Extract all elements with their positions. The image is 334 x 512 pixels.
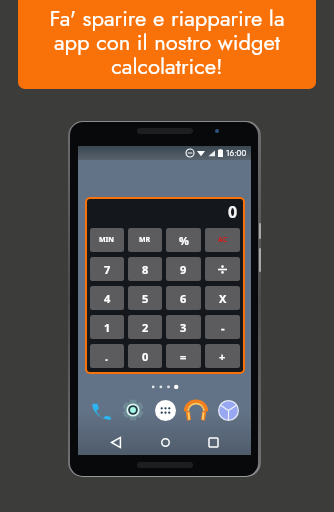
button[interactable]: X — [205, 286, 240, 310]
button[interactable]: MR — [128, 228, 162, 252]
staticText: 0 — [228, 201, 238, 223]
button[interactable]: % — [166, 228, 201, 252]
staticText: 0 — [142, 349, 149, 364]
button[interactable]: 8 — [128, 257, 162, 281]
button[interactable]: - — [205, 315, 240, 339]
staticText: 16:00 — [226, 147, 247, 159]
button[interactable]: Fa' sparire e riapparire la app con il n… — [18, 0, 316, 89]
button[interactable]: Settings — [122, 399, 144, 421]
staticText: MIN — [99, 235, 115, 245]
button[interactable]: Home — [155, 432, 175, 452]
staticText: MR — [139, 235, 151, 245]
button[interactable]: Recent apps — [203, 432, 223, 452]
staticText: % — [179, 233, 189, 248]
button[interactable]: 4 — [90, 286, 124, 310]
staticText: 9 — [180, 262, 187, 277]
staticText: AC — [218, 235, 228, 245]
staticText: Fa' sparire e riapparire la app con il n… — [18, 2, 316, 82]
staticText: 2 — [142, 320, 149, 335]
button[interactable]: 2 — [128, 315, 162, 339]
staticText: 5 — [142, 291, 149, 306]
button[interactable]: AC — [205, 228, 240, 252]
button[interactable]: 5 — [128, 286, 162, 310]
staticText: 3 — [180, 320, 187, 335]
staticText: 7 — [104, 262, 111, 277]
button[interactable]: 1 — [90, 315, 124, 339]
staticText: . — [105, 349, 109, 364]
button[interactable]: Phone — [90, 399, 112, 421]
staticText: = — [180, 349, 187, 364]
staticText: X — [219, 291, 227, 306]
staticText: + — [219, 349, 226, 364]
button[interactable]: . — [90, 344, 124, 368]
button[interactable]: All apps — [154, 399, 176, 421]
button[interactable]: Clock — [217, 399, 239, 421]
staticText: 6 — [180, 291, 187, 306]
staticText: 8 — [142, 262, 149, 277]
button[interactable]: 9 — [166, 257, 201, 281]
button[interactable]: 0 — [128, 344, 162, 368]
button[interactable]: = — [166, 344, 201, 368]
button[interactable]: 7 — [90, 257, 124, 281]
staticText: - — [221, 320, 225, 335]
staticText: 1 — [104, 320, 111, 335]
button[interactable]: Music — [185, 399, 207, 421]
button[interactable]: + — [205, 344, 240, 368]
button[interactable] — [205, 257, 240, 281]
staticText: 4 — [104, 291, 111, 306]
button[interactable]: MIN — [90, 228, 124, 252]
button[interactable]: 3 — [166, 315, 201, 339]
button[interactable]: 6 — [166, 286, 201, 310]
button[interactable]: Back — [106, 432, 126, 452]
